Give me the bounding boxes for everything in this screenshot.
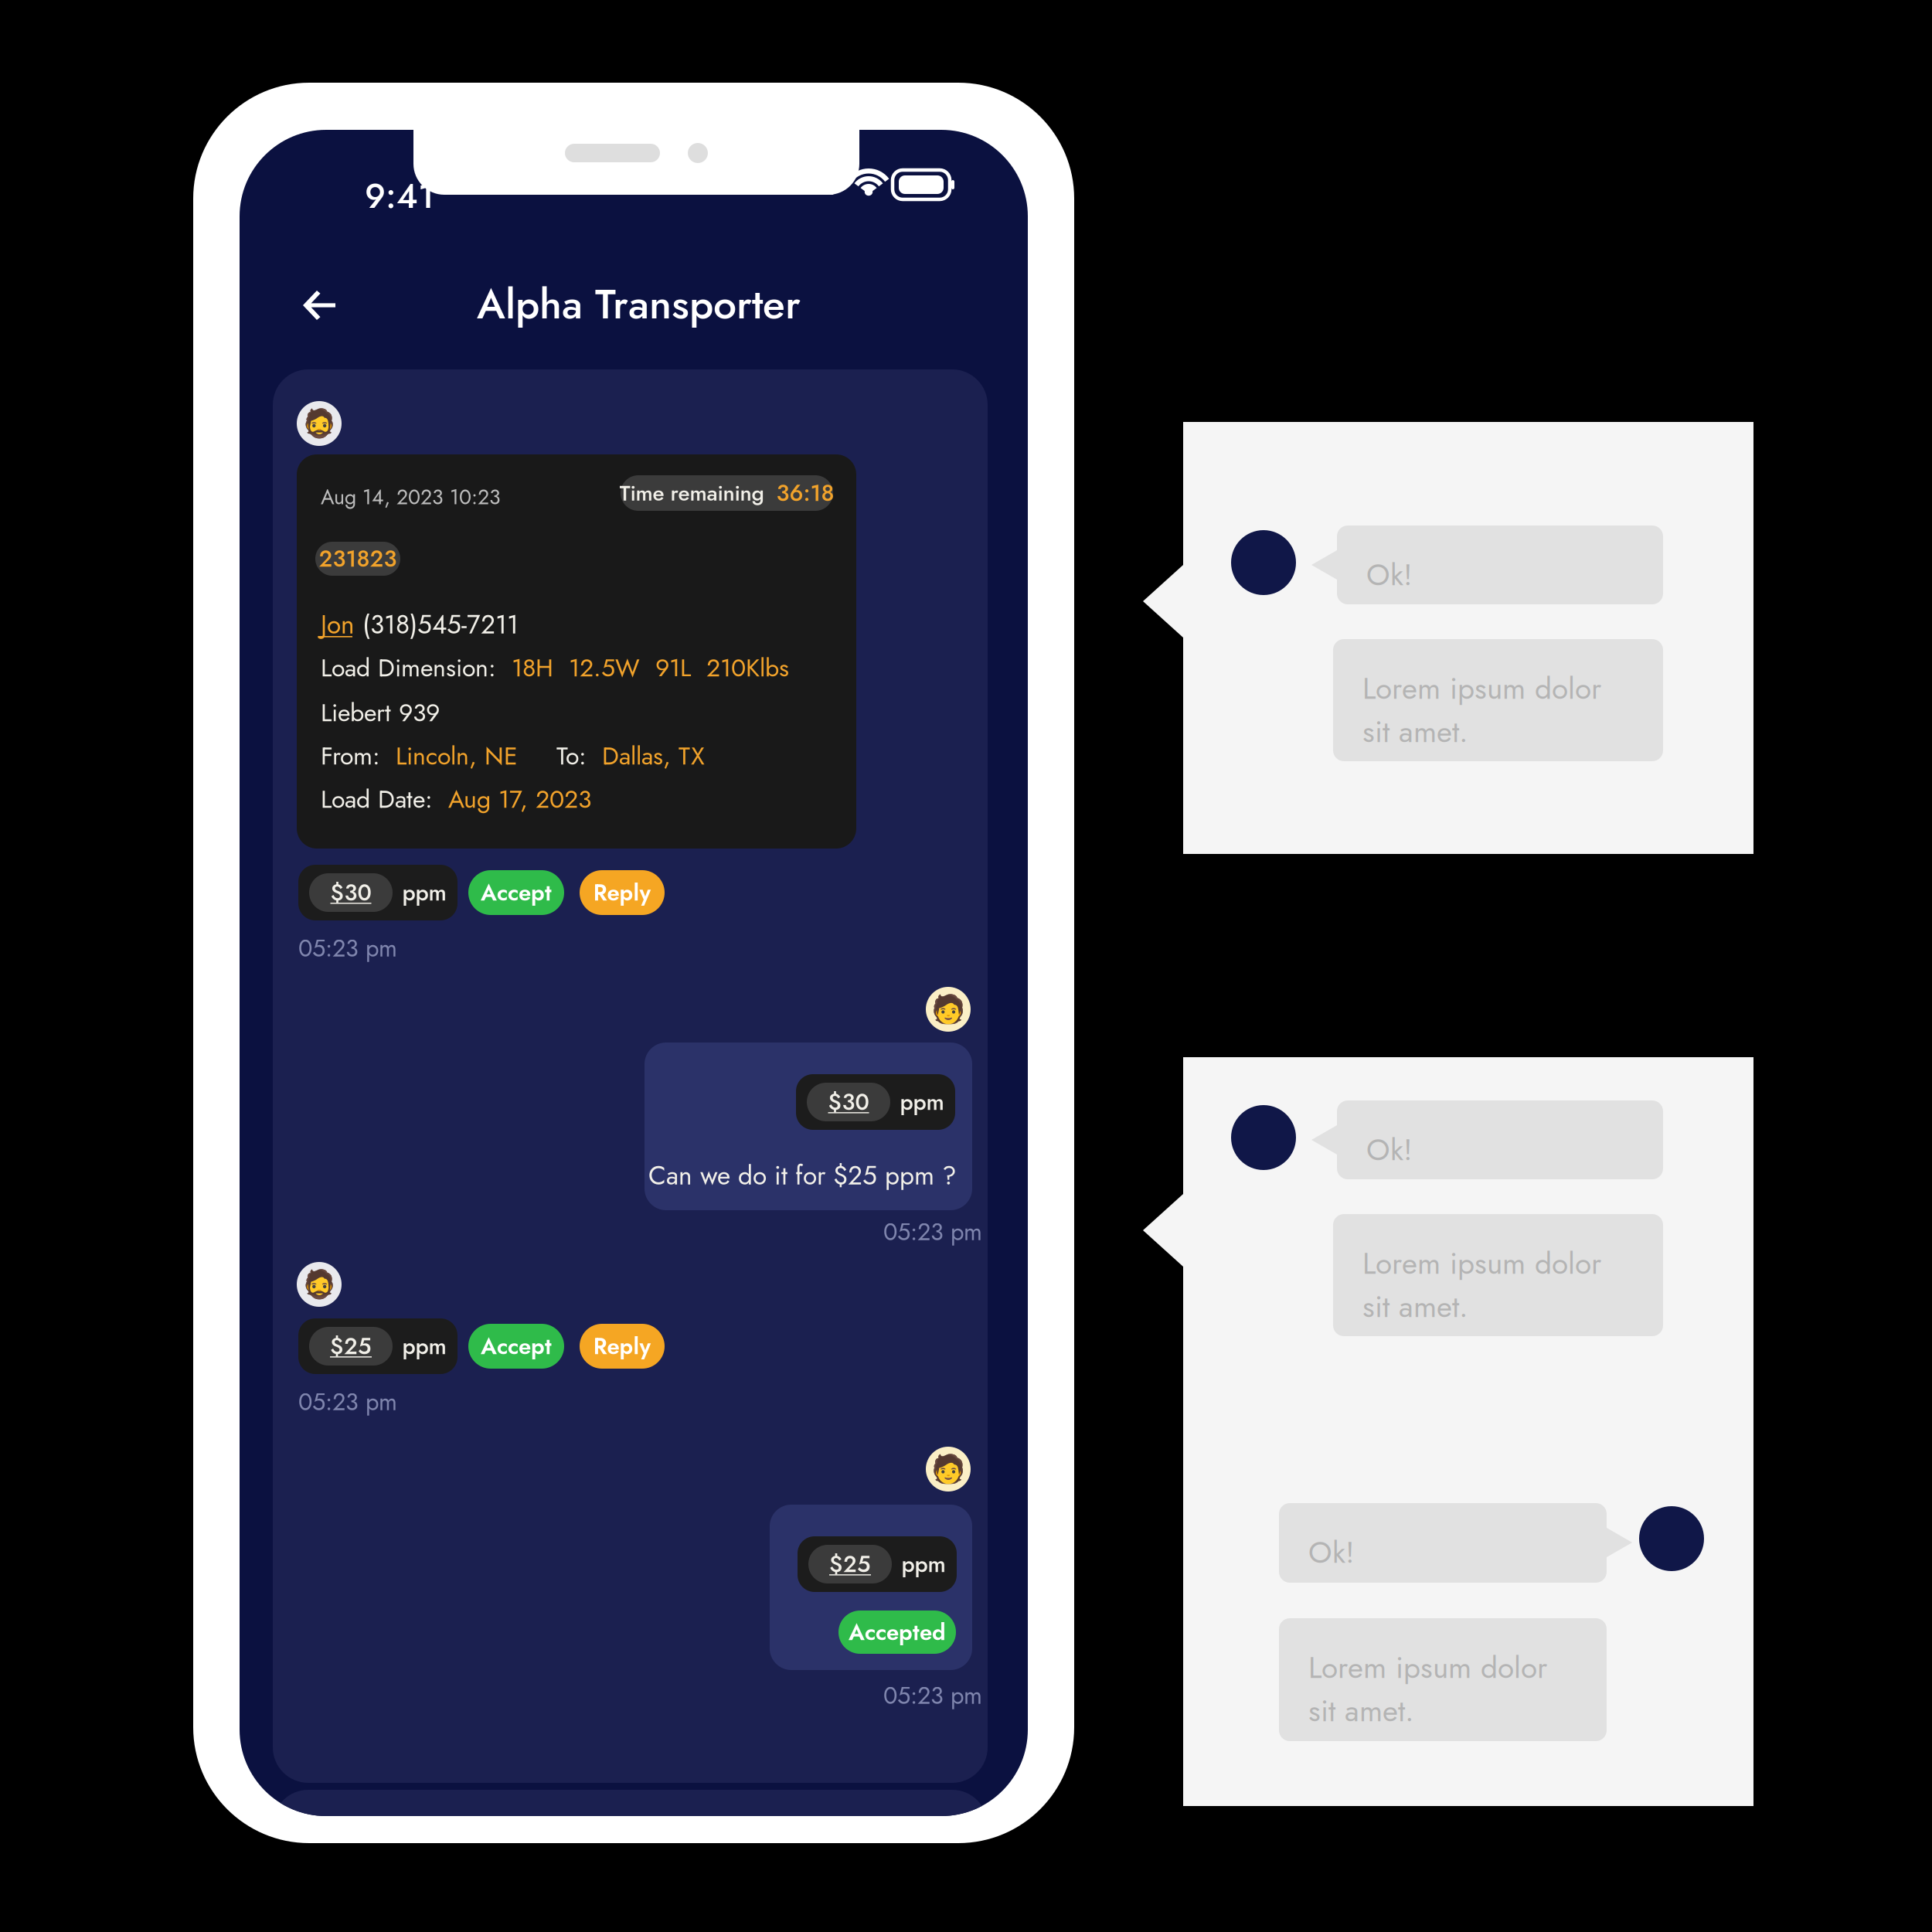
staticText: 🧑 — [931, 1453, 965, 1485]
staticText: 91L — [640, 650, 691, 686]
button[interactable]: Reply — [580, 1324, 665, 1369]
button[interactable]: Accept — [468, 1324, 564, 1369]
button[interactable]: $30 — [796, 1074, 955, 1130]
staticText: ppm — [402, 876, 446, 909]
staticText: $30 — [828, 1086, 869, 1118]
button[interactable]: $30 — [298, 865, 457, 920]
staticText: 05:23 pm — [883, 1679, 982, 1713]
staticText: 05:23 pm — [298, 931, 397, 965]
staticText: Reply — [593, 876, 651, 909]
staticText: 231823 — [319, 542, 397, 575]
staticText: Jon — [321, 606, 355, 643]
staticText: Ok! — [1308, 1531, 1355, 1574]
staticText: 05:23 pm — [298, 1385, 397, 1419]
staticText: Lincoln, NE — [380, 738, 518, 774]
staticText: Accept — [481, 876, 552, 909]
staticText: Alpha Transporter — [477, 274, 801, 334]
staticText: 🧔 — [302, 1268, 336, 1301]
staticText: From: — [321, 738, 380, 774]
staticText: 210Klbs — [691, 650, 789, 686]
staticText: Dallas, TX — [587, 738, 705, 774]
staticText: Liebert 939 — [321, 695, 440, 730]
staticText: To: — [518, 738, 587, 774]
staticText: 18H — [496, 650, 553, 686]
staticText: $25 — [330, 1330, 372, 1363]
button[interactable]: Reply — [580, 870, 665, 915]
staticText: ppm — [402, 1330, 446, 1363]
staticText: Reply — [593, 1330, 651, 1363]
button[interactable]: Accept — [468, 870, 564, 915]
staticText: Accept — [481, 1330, 552, 1363]
staticText: ppm — [900, 1086, 944, 1118]
staticText: ppm — [901, 1548, 946, 1581]
staticText: Aug 17, 2023 — [433, 781, 591, 817]
staticText: Aug 14, 2023 10:23 — [321, 482, 501, 512]
staticText: 9:41 — [365, 172, 434, 221]
staticText: Load Date: — [321, 781, 433, 817]
staticText: Load Dimension: — [321, 650, 496, 686]
staticText: Ok! — [1366, 553, 1413, 597]
staticText: Accepted — [849, 1616, 946, 1649]
staticText: Ok! — [1366, 1128, 1413, 1171]
staticText: Lorem ipsum dolor sit amet. — [1362, 667, 1601, 753]
button[interactable]: $25 — [798, 1536, 957, 1592]
button[interactable]: $25 — [298, 1318, 457, 1374]
staticText: Time remaining — [619, 477, 764, 509]
staticText: 12.5W — [553, 650, 640, 686]
staticText: (318)545-7211 — [355, 606, 519, 643]
staticText: 36:18 — [776, 477, 834, 509]
staticText: $25 — [829, 1548, 871, 1581]
staticText: Lorem ipsum dolor sit amet. — [1362, 1242, 1601, 1328]
staticText: 05:23 pm — [883, 1215, 982, 1249]
staticText: 🧔 — [302, 407, 336, 440]
staticText: 🧑 — [931, 993, 965, 1025]
staticText: Can we do it for $25 ppm ? — [648, 1157, 957, 1194]
staticText: Lorem ipsum dolor sit amet. — [1308, 1646, 1547, 1732]
button[interactable]: Accepted — [838, 1611, 956, 1654]
button[interactable]: Back — [301, 289, 337, 321]
staticText: $30 — [330, 876, 371, 909]
